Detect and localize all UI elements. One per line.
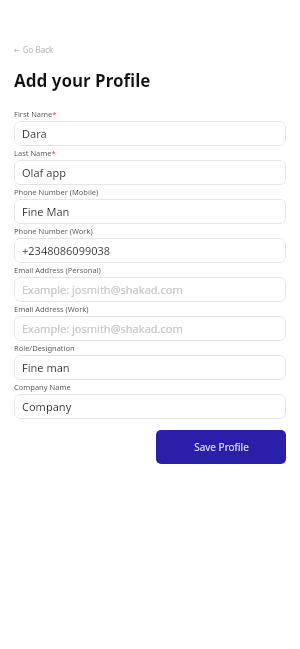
staticText: Role/Designation: [14, 343, 75, 353]
button[interactable]: Fine man: [14, 355, 286, 380]
staticText: Fine Man: [22, 204, 70, 219]
staticText: Fine man: [22, 360, 70, 375]
staticText: Save Profile: [194, 440, 249, 454]
staticText: Example: josmith@shakad.com: [22, 321, 183, 336]
staticText: Add your Profile: [14, 69, 151, 92]
staticText: Email Address (Work): [14, 304, 89, 314]
staticText: Phone Number (Mobile): [14, 187, 99, 197]
button[interactable]: Save Profile: [156, 430, 286, 464]
staticText: Example: josmith@shakad.com: [22, 282, 183, 297]
staticText: Company: [22, 399, 72, 414]
button[interactable]: Olaf app: [14, 160, 286, 185]
staticText: Last Name*: [14, 148, 56, 158]
staticText: Phone Number (Work): [14, 226, 93, 236]
staticText: Email Address (Personal): [14, 265, 101, 275]
staticText: ← Go Back: [14, 44, 54, 55]
button[interactable]: Fine Man: [14, 199, 286, 224]
staticText: First Name*: [14, 109, 57, 119]
button[interactable]: ← Go Back: [14, 43, 54, 56]
staticText: Company Name: [14, 382, 71, 392]
button[interactable]: Company: [14, 394, 286, 419]
button[interactable]: Example: josmith@shakad.com: [14, 316, 286, 341]
button[interactable]: Example: josmith@shakad.com: [14, 277, 286, 302]
staticText: Dara: [22, 126, 47, 141]
button[interactable]: Dara: [14, 121, 286, 146]
staticText: +2348086099038: [22, 243, 111, 258]
staticText: Olaf app: [22, 165, 66, 180]
button[interactable]: +2348086099038: [14, 238, 286, 263]
